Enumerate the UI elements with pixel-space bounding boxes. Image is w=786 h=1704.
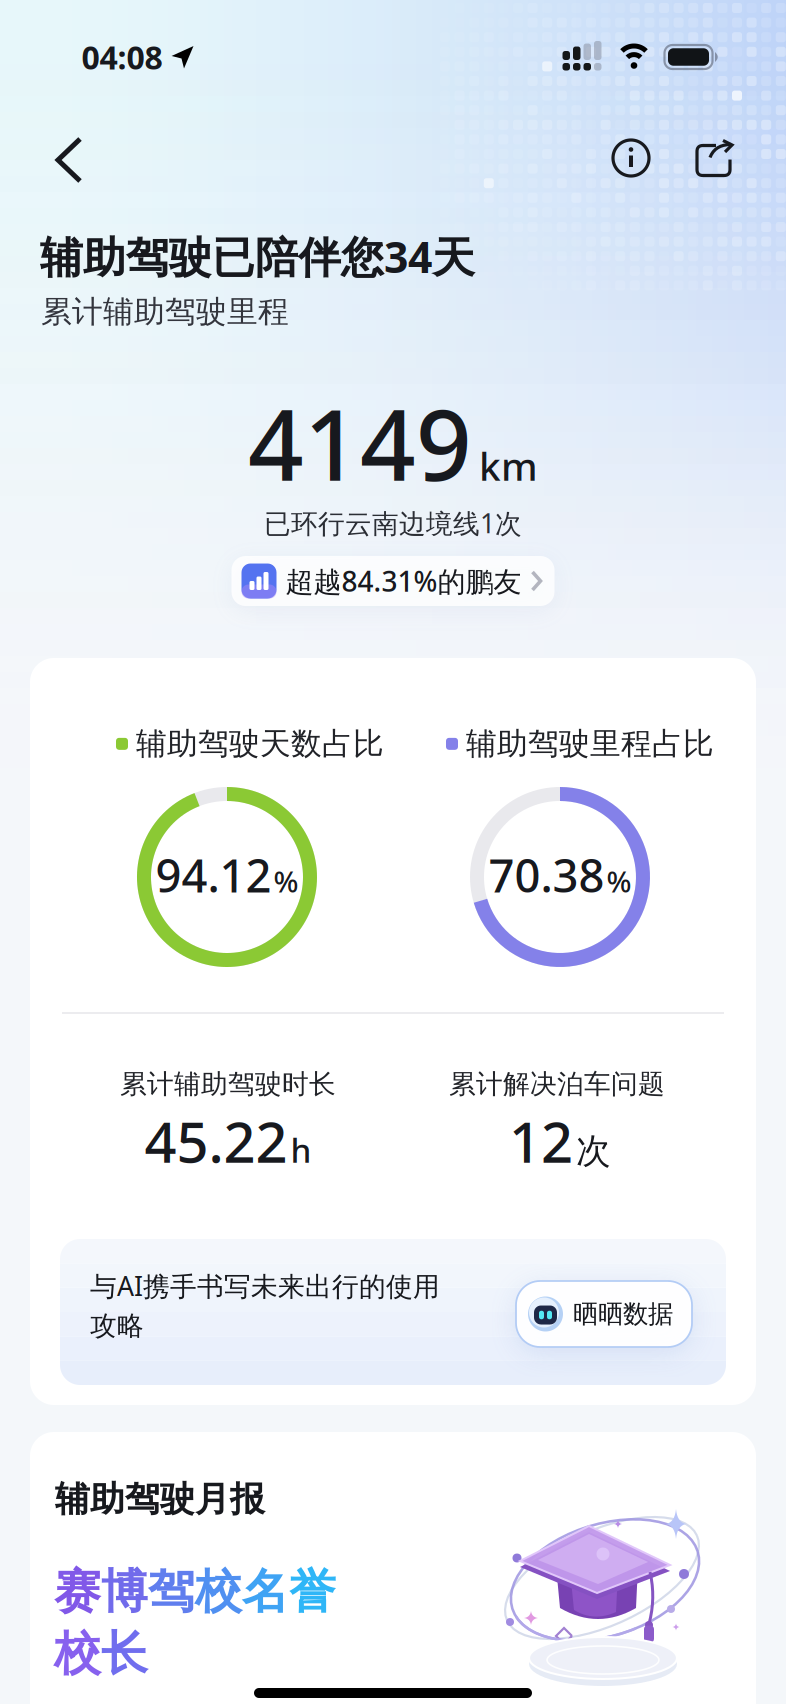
staticText: 04:08 <box>81 36 162 78</box>
staticText: 辅助驾驶里程占比 <box>466 725 714 763</box>
staticText: 辅助驾驶月报 <box>55 1478 265 1521</box>
staticText: 累计辅助驾驶时长 <box>120 1068 336 1100</box>
staticText: 长 <box>101 1625 148 1682</box>
button[interactable]: 晒晒数据 <box>516 1281 692 1347</box>
staticText: 70.38 <box>488 845 604 905</box>
button[interactable]: Share <box>686 130 742 186</box>
button[interactable]: Back <box>37 128 101 192</box>
staticText: % <box>606 862 631 901</box>
staticText: 名 <box>242 1563 289 1620</box>
staticText: 4149 <box>248 378 472 508</box>
staticText: km <box>479 440 538 491</box>
staticText: 与AI携手书写未来出行的使用 <box>90 1268 440 1303</box>
staticText: 辅助驾驶已陪伴您34天 <box>40 228 475 285</box>
staticText: 12 <box>509 1104 573 1178</box>
staticText: % <box>273 862 298 901</box>
staticText: 辅助驾驶天数占比 <box>136 725 384 763</box>
staticText: 已环行云南边境线1次 <box>264 505 522 541</box>
staticText: 博 <box>101 1563 148 1620</box>
staticText: 45.22 <box>144 1104 287 1178</box>
button[interactable]: Info <box>603 130 659 186</box>
button[interactable]: 超越84.31%的鹏友 <box>231 556 554 606</box>
staticText: 94.12 <box>155 845 271 905</box>
staticText: 誉 <box>289 1563 336 1620</box>
staticText: 次 <box>576 1130 611 1172</box>
staticText: 校 <box>195 1563 242 1620</box>
staticText: 校 <box>54 1625 101 1682</box>
staticText: 驾 <box>148 1563 195 1620</box>
staticText: 累计解决泊车问题 <box>449 1068 665 1100</box>
staticText: 超越84.31%的鹏友 <box>285 562 521 600</box>
staticText: 攻略 <box>90 1309 144 1342</box>
staticText: 晒晒数据 <box>573 1298 673 1329</box>
staticText: 赛 <box>54 1563 101 1620</box>
button[interactable]: 辅助驾驶月报 <box>30 1432 756 1704</box>
staticText: 累计辅助驾驶里程 <box>41 293 289 331</box>
staticText: h <box>290 1128 311 1172</box>
